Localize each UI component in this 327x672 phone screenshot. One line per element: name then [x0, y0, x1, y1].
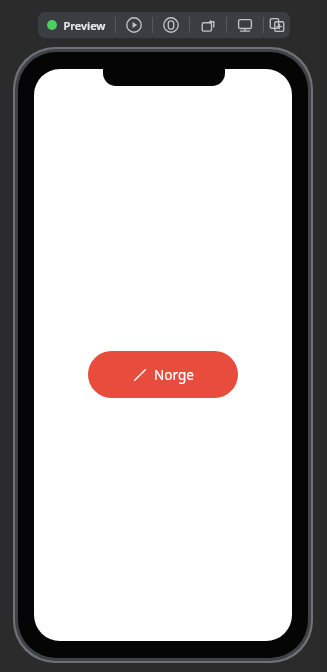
button[interactable]: Preview	[38, 12, 115, 38]
button[interactable]: Run preview	[116, 12, 152, 38]
staticText: Norge	[154, 366, 194, 384]
button[interactable]: Deploy to device	[227, 12, 263, 38]
staticText: Preview	[63, 18, 106, 33]
button[interactable]: Animation preview	[190, 12, 226, 38]
button[interactable]: Copy preview	[264, 12, 290, 38]
button[interactable]: Interactive preview	[153, 12, 189, 38]
button[interactable]: Norge	[88, 351, 238, 398]
